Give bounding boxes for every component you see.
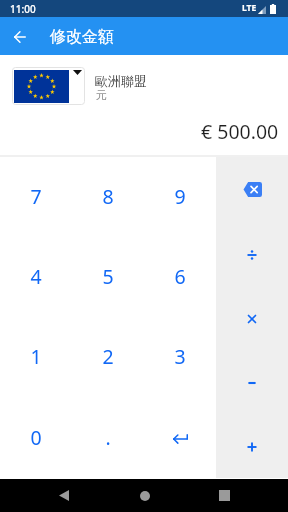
button[interactable]: 0	[0, 398, 72, 479]
button[interactable]: 歐洲聯盟	[0, 55, 288, 117]
staticText: 6	[174, 263, 186, 290]
button[interactable]: 7	[0, 157, 72, 237]
staticText: 0	[30, 424, 42, 451]
staticText: 5	[102, 263, 114, 290]
staticText: .	[105, 424, 111, 451]
button[interactable]: Divide	[216, 222, 288, 287]
button[interactable]: Plus	[216, 415, 288, 479]
staticText: € 500.00	[201, 118, 279, 145]
staticText: 元	[96, 88, 107, 102]
button[interactable]: Home	[128, 479, 161, 512]
button[interactable]: Back	[5, 22, 34, 51]
button[interactable]: 8	[72, 157, 144, 237]
button[interactable]: 1	[0, 317, 72, 398]
staticText: 8	[102, 183, 114, 210]
button[interactable]: Multiply	[216, 287, 288, 351]
staticText: 4	[30, 263, 42, 290]
staticText: 1	[30, 343, 42, 370]
button[interactable]: Back	[47, 479, 80, 512]
staticText: 9	[174, 183, 186, 210]
staticText: 11:00	[10, 2, 36, 16]
staticText: 修改金額	[50, 27, 114, 47]
button[interactable]: 9	[144, 157, 216, 237]
staticText: 3	[174, 343, 186, 370]
button[interactable]: 4	[0, 237, 72, 317]
button[interactable]: Recents	[208, 479, 241, 512]
staticText: 2	[102, 343, 114, 370]
button[interactable]: 6	[144, 237, 216, 317]
button[interactable]: Minus	[216, 351, 288, 415]
button[interactable]: 5	[72, 237, 144, 317]
staticText: 7	[30, 183, 42, 210]
staticText: LTE	[242, 2, 257, 14]
button[interactable]: 2	[72, 317, 144, 398]
button[interactable]: Enter	[144, 398, 216, 479]
button[interactable]: 3	[144, 317, 216, 398]
staticText: 歐洲聯盟	[95, 73, 147, 89]
button[interactable]: .	[72, 398, 144, 479]
button[interactable]: Backspace	[216, 157, 288, 222]
